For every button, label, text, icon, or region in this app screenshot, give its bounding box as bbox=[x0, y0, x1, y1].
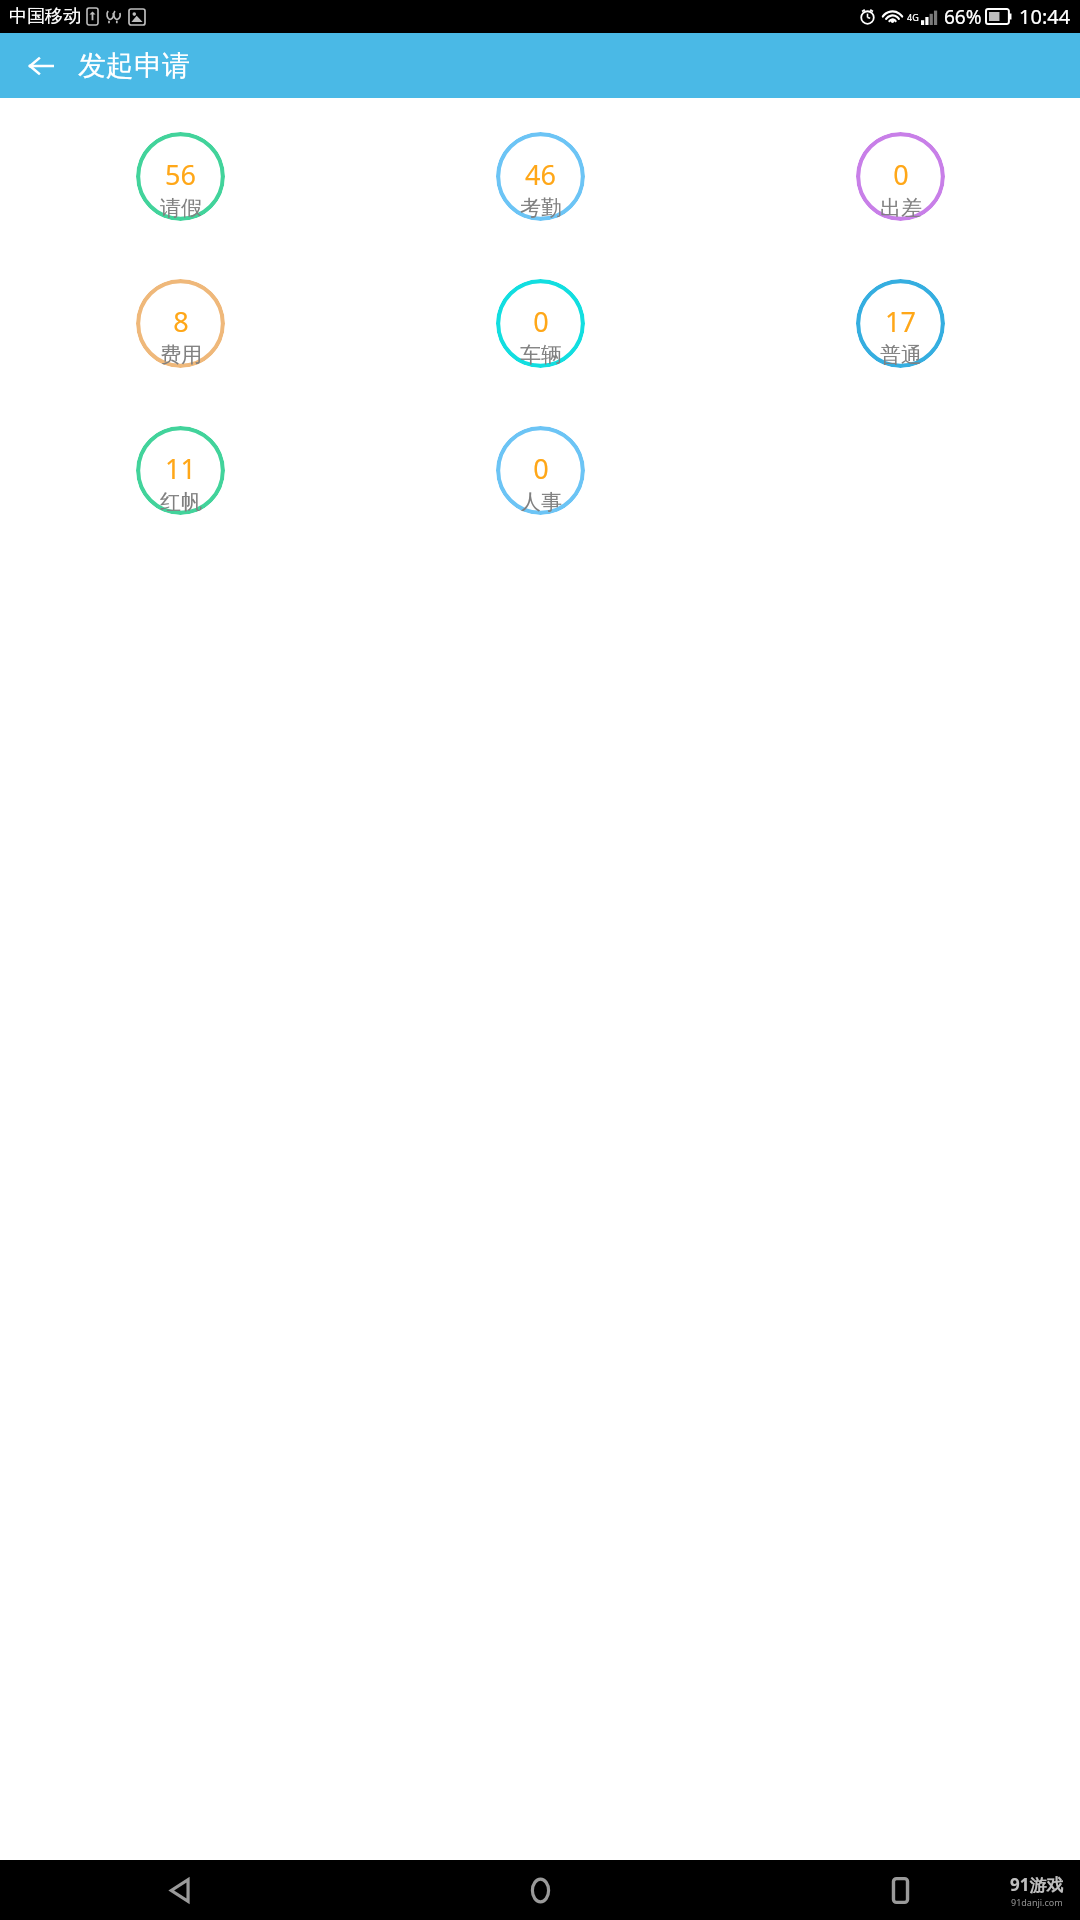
staticText: 费用 bbox=[160, 342, 202, 368]
staticText: 66% bbox=[944, 4, 982, 30]
staticText: 46 bbox=[525, 156, 556, 193]
staticText: 8 bbox=[173, 303, 189, 340]
button[interactable]: 17 bbox=[856, 279, 945, 368]
staticText: 91游戏 bbox=[1010, 1873, 1064, 1896]
button[interactable]: 0 bbox=[496, 426, 585, 515]
button[interactable]: 0 bbox=[496, 279, 585, 368]
button[interactable]: Back bbox=[0, 1860, 360, 1920]
staticText: 中国移动 bbox=[9, 5, 81, 28]
staticText: 请假 bbox=[160, 195, 202, 221]
button[interactable]: Recent apps bbox=[720, 1860, 1080, 1920]
staticText: 车辆 bbox=[520, 342, 562, 368]
staticText: 4G bbox=[907, 11, 919, 23]
staticText: 普通 bbox=[880, 342, 922, 368]
staticText: 出差 bbox=[880, 195, 922, 221]
staticText: 10:44 bbox=[1019, 3, 1071, 30]
button[interactable]: 46 bbox=[496, 132, 585, 221]
staticText: 0 bbox=[893, 156, 909, 193]
staticText: 17 bbox=[885, 303, 916, 340]
button[interactable]: Home bbox=[360, 1860, 720, 1920]
button[interactable]: Back bbox=[18, 43, 64, 89]
staticText: 91danji.com bbox=[1011, 1896, 1063, 1908]
button[interactable]: 0 bbox=[856, 132, 945, 221]
staticText: 红帆 bbox=[160, 489, 202, 515]
button[interactable]: 11 bbox=[136, 426, 225, 515]
staticText: 发起申请 bbox=[78, 48, 190, 83]
staticText: 人事 bbox=[520, 489, 562, 515]
staticText: 56 bbox=[165, 156, 196, 193]
staticText: 11 bbox=[165, 450, 196, 487]
button[interactable]: 56 bbox=[136, 132, 225, 221]
staticText: 考勤 bbox=[520, 195, 562, 221]
staticText: 0 bbox=[533, 450, 549, 487]
button[interactable]: 8 bbox=[136, 279, 225, 368]
staticText: 0 bbox=[533, 303, 549, 340]
